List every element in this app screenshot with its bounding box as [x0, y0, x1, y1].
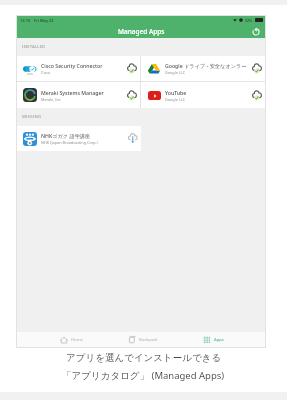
staticText: Backpack: [139, 337, 158, 343]
staticText: Cisco: [41, 70, 51, 75]
button[interactable]: NHKゴガク 語学講座: [17, 126, 141, 151]
button[interactable]: Meraki Systems Manager: [17, 82, 140, 108]
staticText: Google ドライブ - 安全なオンラー: [165, 62, 247, 69]
staticText: 「アプリカタログ」 (Managed Apps): [62, 369, 225, 382]
staticText: 92%: [245, 18, 253, 23]
button[interactable]: YouTube: [141, 82, 265, 108]
staticText: INSTALLED: [22, 44, 46, 50]
staticText: Cisco Security Connector: [41, 62, 103, 69]
staticText: Meraki Systems Manager: [41, 89, 104, 96]
button[interactable]: Backpack: [107, 332, 178, 347]
staticText: アプリを選んでインストールできる: [66, 352, 222, 364]
staticText: Google LLC: [165, 70, 186, 75]
button[interactable]: Home: [36, 332, 107, 347]
button[interactable]: Cisco Security Connector: [17, 56, 140, 81]
staticText: Fri May 22: [34, 18, 54, 23]
staticText: 13:10: [20, 18, 31, 23]
staticText: NHK (Japan Broadcasting Corp.): [41, 140, 98, 145]
staticText: NHKゴガク 語学講座: [41, 132, 91, 139]
staticText: MISSING: [22, 114, 42, 120]
button[interactable]: Refresh: [250, 26, 261, 37]
button[interactable]: Google ドライブ - 安全なオンラー: [141, 56, 265, 81]
staticText: YouTube: [165, 89, 187, 96]
button[interactable]: Apps: [178, 332, 249, 347]
staticText: Meraki, Inc: [41, 97, 61, 102]
staticText: Home: [71, 337, 83, 343]
staticText: Google LLC: [165, 97, 186, 102]
staticText: Apps: [214, 337, 224, 343]
staticText: Managed Apps: [118, 27, 165, 36]
